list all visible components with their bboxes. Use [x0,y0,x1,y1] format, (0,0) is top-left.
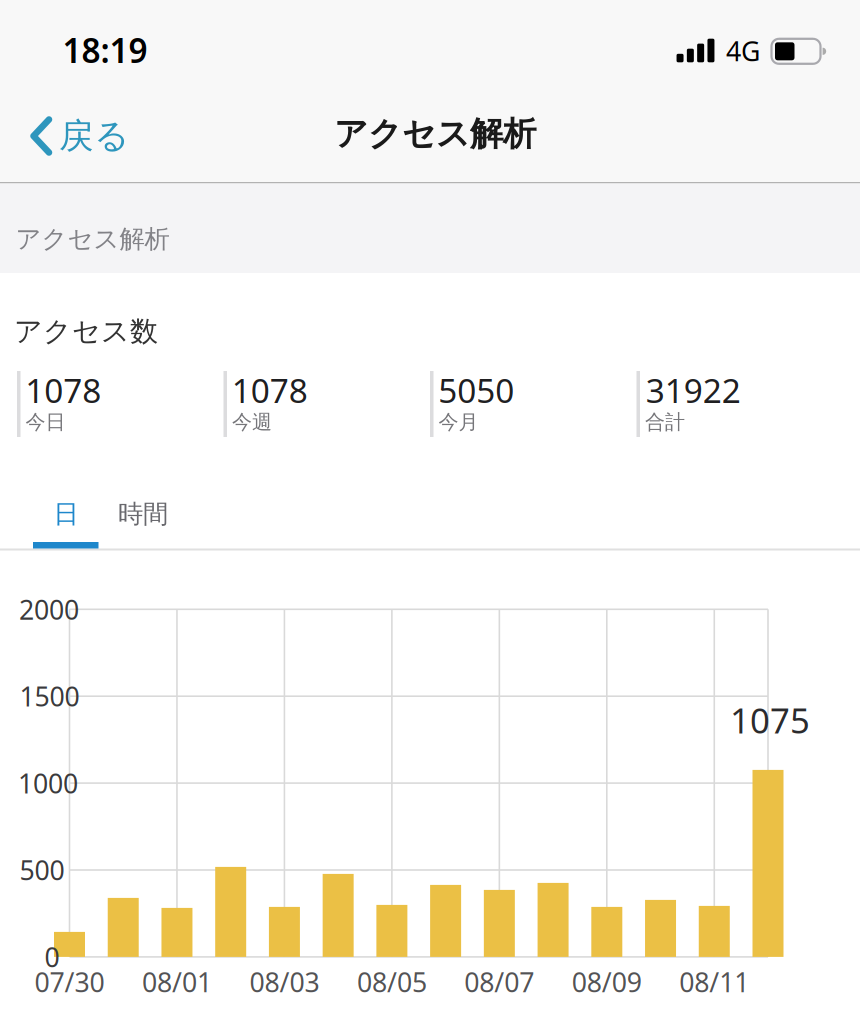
staticText: 今月 [438,410,478,434]
staticText: 1500 [19,678,79,714]
button[interactable]: 日 [33,492,99,536]
button[interactable]: 戻る [31,115,129,157]
staticText: 08/07 [464,964,534,1000]
staticText: 2000 [19,592,79,627]
staticText: 07/30 [34,964,104,1000]
staticText: 5050 [438,368,514,412]
staticText: 08/09 [572,964,642,1000]
staticText: 時間 [118,498,168,529]
staticText: 1078 [25,368,101,412]
staticText: アクセス解析 [334,113,536,154]
staticText: 500 [19,852,64,888]
staticText: 今週 [232,410,272,434]
staticText: 1000 [18,765,78,801]
staticText: 08/05 [357,964,427,1000]
staticText: 戻る [59,115,129,157]
staticText: アクセス数 [14,314,158,349]
staticText: 31922 [646,368,741,412]
staticText: 18:19 [62,28,147,72]
staticText: 今日 [25,410,65,434]
staticText: 1078 [232,368,308,412]
staticText: 4G [726,33,760,69]
staticText: 合計 [645,410,685,434]
staticText: アクセス解析 [15,223,169,254]
staticText: 08/01 [142,964,212,1000]
staticText: 1075 [730,697,810,743]
staticText: 08/03 [249,964,319,1000]
staticText: 08/11 [679,964,749,1000]
staticText: 0 [45,939,60,975]
staticText: 日 [53,498,78,529]
button[interactable]: 時間 [103,492,183,536]
